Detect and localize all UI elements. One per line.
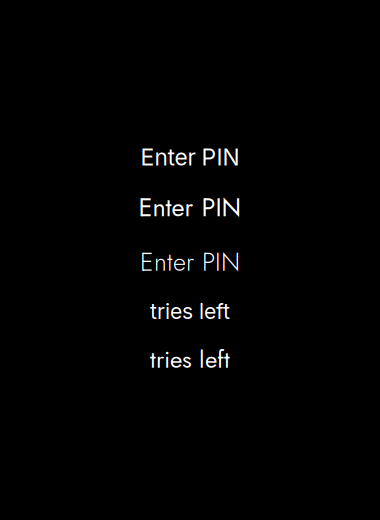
staticText: Enter PIN [138,189,241,226]
staticText: Enter PIN [140,244,240,280]
staticText: tries left [150,342,230,377]
staticText: tries left [150,298,230,324]
staticText: Enter PIN [140,143,239,171]
